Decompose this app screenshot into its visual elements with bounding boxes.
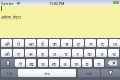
button[interactable]: द <box>97 39 108 47</box>
button[interactable]: इ <box>37 49 48 57</box>
staticText: ऐ <box>17 40 20 47</box>
button[interactable]: ई <box>37 39 48 47</box>
staticText: ऍ <box>19 60 22 67</box>
staticText: ई <box>41 40 44 47</box>
button[interactable]: छ <box>49 59 59 67</box>
staticText: ख <box>29 60 34 67</box>
staticText: जाएँ <box>86 71 92 76</box>
button[interactable]: ब <box>61 39 72 47</box>
button[interactable]: ऊ <box>49 39 60 47</box>
button[interactable]: क <box>84 49 95 57</box>
staticText: अ <box>28 50 33 57</box>
button[interactable]: ए <box>13 49 24 57</box>
button[interactable]: आ <box>25 39 36 47</box>
button[interactable]: र <box>72 49 83 57</box>
staticText: आ <box>28 40 34 47</box>
button[interactable]: फ <box>71 59 81 67</box>
button[interactable]: प <box>60 49 71 57</box>
button[interactable]: ङ <box>94 59 104 67</box>
staticText: ए <box>17 50 20 57</box>
button[interactable]: स्पेस <box>18 69 76 77</box>
staticText: ह <box>77 40 80 47</box>
button[interactable]: उ <box>49 49 60 57</box>
staticText: च <box>112 50 116 57</box>
button[interactable]: च <box>108 49 119 57</box>
staticText: त <box>100 50 104 57</box>
staticText: र <box>76 50 79 57</box>
button[interactable]: ऍ <box>15 59 25 67</box>
button[interactable]: औ <box>1 39 12 47</box>
staticText: ङ <box>97 60 101 67</box>
button[interactable]: ठ <box>60 59 70 67</box>
staticText: द <box>101 40 104 47</box>
staticText: ऊ <box>52 40 57 47</box>
staticText: ढ <box>85 60 89 67</box>
button[interactable]: ख <box>26 59 36 67</box>
staticText: इ <box>41 50 44 57</box>
staticText: स्पेस <box>44 71 50 76</box>
staticText: प <box>64 50 68 57</box>
staticText: थ <box>41 60 45 67</box>
staticText: ब <box>65 40 69 47</box>
staticText: क <box>87 50 92 57</box>
staticText: ज <box>113 40 117 47</box>
button[interactable]: ओ <box>1 49 12 57</box>
staticText: छ <box>52 60 56 67</box>
button[interactable]: अ <box>25 49 36 57</box>
button[interactable]: ह <box>73 39 84 47</box>
staticText: ओ <box>4 50 10 57</box>
button[interactable]: त <box>96 49 107 57</box>
button[interactable]: ऐ <box>13 39 24 47</box>
staticText: ग <box>89 40 93 47</box>
staticText: ठ <box>63 60 67 67</box>
button[interactable]: Shift <box>1 59 15 67</box>
staticText: औ <box>4 40 10 47</box>
button[interactable]: Dictate <box>101 69 120 77</box>
button[interactable]: थ <box>38 59 48 67</box>
staticText: फ <box>74 60 79 67</box>
staticText: उ <box>53 50 56 57</box>
staticText: 123 <box>6 71 13 76</box>
button[interactable]: Backspace <box>105 59 120 67</box>
button[interactable]: जाएँ <box>78 69 100 77</box>
button[interactable]: ढ <box>82 59 92 67</box>
button[interactable]: ग <box>85 39 96 47</box>
button[interactable]: ज <box>109 39 120 47</box>
staticText: अहिंसा, वेदांत <box>1 15 21 20</box>
staticText: 11:02 PM <box>49 1 65 6</box>
staticText: Carrier <box>1 1 14 6</box>
button[interactable]: 123 <box>1 69 18 77</box>
